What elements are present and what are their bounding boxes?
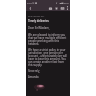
staticText: ONE CENTRIC ENT bbox=[28, 15, 45, 18]
button[interactable]: Delete bbox=[53, 5, 59, 11]
staticText: Timely deliveries bbox=[28, 19, 49, 23]
button[interactable]: Archive bbox=[47, 5, 53, 11]
button[interactable]: Mark unread bbox=[59, 5, 65, 11]
button[interactable]: Signature image bbox=[31, 82, 48, 93]
staticText: Dear Sir/Madam, We are pleased to inform… bbox=[28, 26, 67, 78]
staticText: ▾ ▂▄▆ 82% bbox=[56, 1, 69, 4]
staticText: 9:26 ✉ ● bbox=[27, 1, 38, 4]
button[interactable]: More options bbox=[65, 5, 69, 11]
button[interactable]: Back bbox=[27, 5, 33, 11]
